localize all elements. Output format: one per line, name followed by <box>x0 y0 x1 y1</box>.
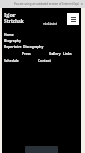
button[interactable]: Biography <box>4 38 21 42</box>
staticText: Home <box>4 32 14 36</box>
button[interactable]: Links <box>63 51 72 55</box>
staticText: Schedule <box>4 58 19 62</box>
button[interactable]: Discography <box>23 44 44 48</box>
button[interactable]: Contact <box>38 58 51 62</box>
button[interactable]: Schedule <box>4 58 19 62</box>
staticText: Press <box>22 51 31 55</box>
staticText: Igor <box>4 11 16 19</box>
staticText: Biography <box>4 38 21 42</box>
staticText: Gallery <box>49 51 61 55</box>
button[interactable]: Repertoire <box>4 44 22 48</box>
staticText: Repertoire <box>4 44 22 48</box>
staticText: violinist <box>43 21 57 26</box>
staticText: Contact <box>38 58 51 62</box>
button[interactable]: Home <box>4 32 14 36</box>
staticText: Strizhak <box>4 18 24 24</box>
button[interactable]: Menu <box>67 13 79 25</box>
staticText: Discography <box>23 44 44 48</box>
button[interactable]: Gallery <box>49 51 61 55</box>
staticText: x <box>81 2 83 6</box>
button[interactable]: Press <box>22 51 31 55</box>
staticText: You are using an outdated version of Int… <box>14 2 79 6</box>
staticText: Links <box>63 51 72 55</box>
